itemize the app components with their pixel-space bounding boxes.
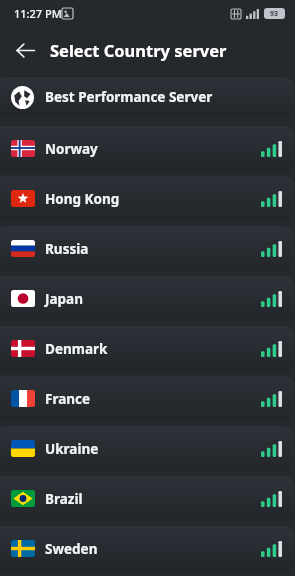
staticText: Brazil xyxy=(45,490,83,508)
staticText: Hong Kong xyxy=(45,190,120,208)
staticText: Japan xyxy=(45,290,83,308)
staticText: 93 xyxy=(270,9,279,19)
staticText: Denmark xyxy=(45,340,108,358)
button[interactable]: Best Performance Server xyxy=(0,77,295,117)
button[interactable]: Ukraine xyxy=(0,426,295,471)
button[interactable]: France xyxy=(0,376,295,421)
staticText: France xyxy=(45,390,91,408)
staticText: Sweden xyxy=(45,540,98,558)
button[interactable]: Japan xyxy=(0,276,295,321)
button[interactable]: Denmark xyxy=(0,326,295,371)
button[interactable]: Norway xyxy=(0,126,295,171)
staticText: Select Country server xyxy=(50,39,227,61)
button[interactable]: Russia xyxy=(0,226,295,271)
staticText: Best Performance Server xyxy=(45,88,213,106)
staticText: Russia xyxy=(45,240,89,258)
staticText: Ukraine xyxy=(45,440,99,458)
button[interactable]: Brazil xyxy=(0,476,295,521)
button[interactable]: Sweden xyxy=(0,526,295,571)
staticText: Norway xyxy=(45,140,98,158)
button[interactable]: Back xyxy=(6,31,44,69)
button[interactable]: Hong Kong xyxy=(0,176,295,221)
staticText: 11:27 PM xyxy=(14,6,62,21)
